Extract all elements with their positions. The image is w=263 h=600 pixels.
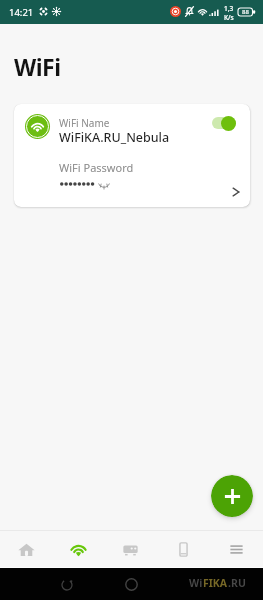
staticText: 14:21: [9, 6, 34, 19]
button[interactable]: Router: [104, 531, 157, 567]
staticText: FIKA: [203, 576, 228, 590]
staticText: WiFi: [14, 51, 61, 82]
staticText: Wi: [189, 576, 203, 590]
button[interactable]: Back: [56, 574, 78, 596]
staticText: WiFi Password: [59, 160, 134, 175]
staticText: RU: [231, 576, 246, 590]
staticText: K/s: [224, 13, 234, 22]
staticText: WiFiKA.RU_Nebula: [59, 129, 170, 146]
button[interactable]: My device: [157, 531, 210, 567]
button[interactable]: Home: [120, 573, 142, 595]
staticText: 88: [242, 8, 249, 16]
staticText: 1,3: [224, 4, 234, 13]
button[interactable]: WiFi networks: [52, 531, 104, 567]
button[interactable]: Home: [0, 531, 52, 567]
button[interactable]: WiFi Name: [14, 104, 250, 207]
button[interactable]: WiFi toggle: [212, 115, 238, 131]
staticText: .: [228, 576, 231, 590]
button[interactable]: Add: [211, 475, 253, 517]
button[interactable]: Menu: [210, 531, 263, 567]
staticText: WiFi Name: [59, 116, 110, 130]
